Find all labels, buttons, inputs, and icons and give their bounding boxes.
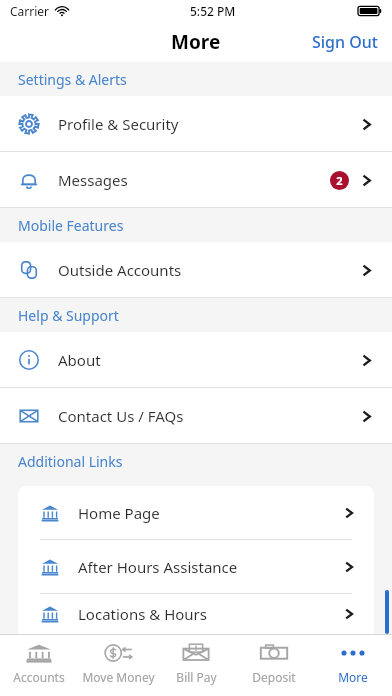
staticText: Bill Pay xyxy=(176,669,217,685)
staticText: Outside Accounts xyxy=(58,260,182,280)
button[interactable]: More xyxy=(314,634,392,696)
button[interactable]: Move Money xyxy=(79,634,157,696)
staticText: Profile & Security xyxy=(58,114,179,134)
button[interactable]: About xyxy=(0,332,392,388)
staticText: More xyxy=(338,669,368,685)
staticText: Mobile Features xyxy=(18,216,124,235)
staticText: Sign Out xyxy=(312,31,378,53)
button[interactable]: Messages xyxy=(0,152,392,208)
button[interactable]: Deposit xyxy=(235,634,313,696)
staticText: Locations & Hours xyxy=(78,604,207,624)
staticText: More xyxy=(171,29,221,55)
staticText: Home Page xyxy=(78,503,160,523)
button[interactable]: Outside Accounts xyxy=(0,242,392,298)
staticText: Help & Support xyxy=(18,306,119,325)
button[interactable]: Locations & Hours xyxy=(18,594,374,634)
button[interactable]: After Hours Assistance xyxy=(18,540,374,594)
button[interactable]: Accounts xyxy=(0,634,78,696)
staticText: 5:52 PM xyxy=(190,3,236,19)
staticText: Additional Links xyxy=(18,452,123,471)
staticText: Settings & Alerts xyxy=(18,70,127,89)
staticText: Messages xyxy=(58,170,128,190)
staticText: Deposit xyxy=(252,669,296,685)
staticText: About xyxy=(58,350,101,370)
button[interactable]: Home Page xyxy=(18,486,374,540)
staticText: After Hours Assistance xyxy=(78,557,238,577)
staticText: Contact Us / FAQs xyxy=(58,406,184,426)
button[interactable]: Contact Us / FAQs xyxy=(0,388,392,444)
button[interactable]: Bill Pay xyxy=(157,634,235,696)
staticText: Move Money xyxy=(82,669,155,685)
button[interactable]: Profile & Security xyxy=(0,96,392,152)
staticText: Carrier xyxy=(10,3,50,19)
staticText: Accounts xyxy=(13,669,65,685)
button[interactable]: Sign Out xyxy=(298,22,392,62)
staticText: 2 xyxy=(336,173,343,188)
